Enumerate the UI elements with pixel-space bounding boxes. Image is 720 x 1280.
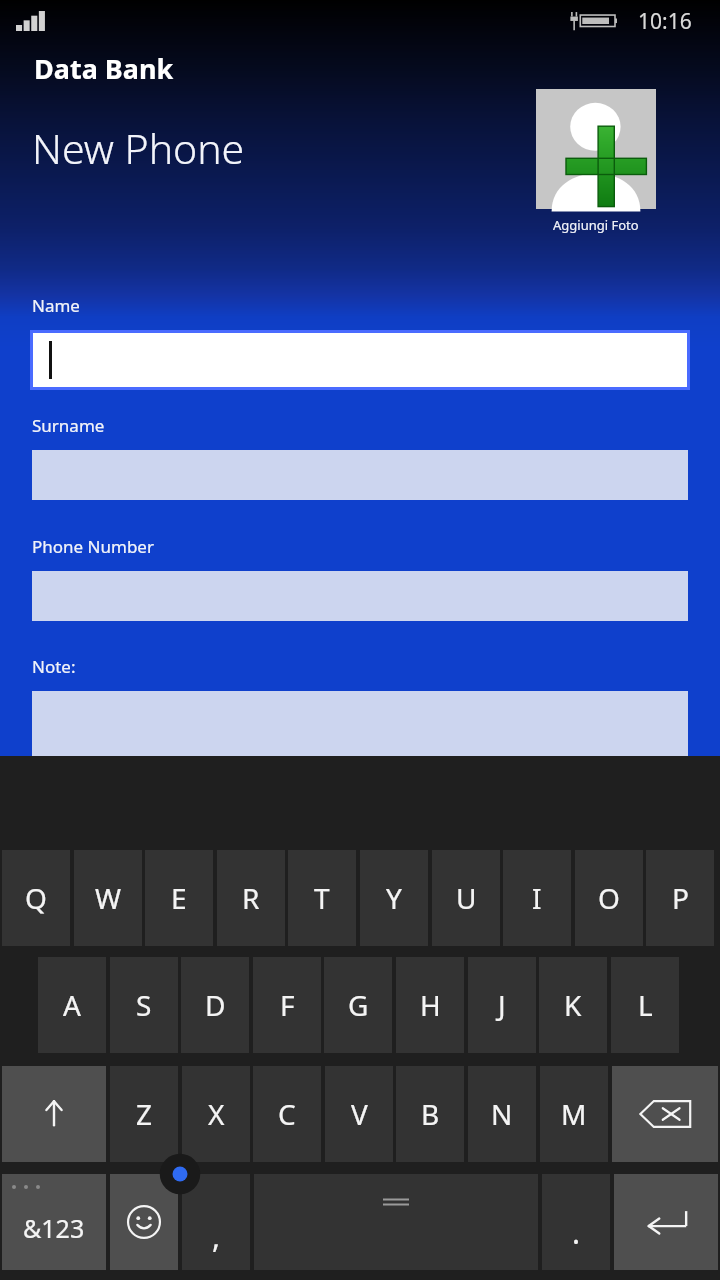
button[interactable]: W [74, 850, 142, 946]
staticText: M [561, 1095, 587, 1133]
staticText: U [456, 879, 477, 917]
staticText: &123 [23, 1211, 85, 1245]
button[interactable]: I [503, 850, 571, 946]
button[interactable]: T [288, 850, 356, 946]
staticText: K [564, 986, 582, 1024]
staticText: L [638, 986, 653, 1024]
staticText: Note: [32, 655, 76, 678]
other: Move cursor [158, 1152, 202, 1196]
button[interactable]: , [182, 1174, 250, 1270]
staticText: V [351, 1095, 368, 1133]
staticText: H [420, 986, 441, 1024]
button[interactable] [30, 330, 690, 390]
button[interactable]: G [324, 957, 392, 1053]
button[interactable]: Shift [2, 1066, 106, 1162]
staticText: , [212, 1216, 221, 1257]
staticText: 10:16 [638, 7, 692, 36]
staticText: P [672, 879, 689, 917]
button[interactable]: J [468, 957, 536, 1053]
button[interactable]: V [325, 1066, 393, 1162]
staticText: D [205, 986, 226, 1024]
button[interactable]: L [611, 957, 679, 1053]
button[interactable]: R [217, 850, 285, 946]
staticText: . [572, 1212, 581, 1253]
staticText: O [598, 879, 620, 917]
button[interactable]: N [468, 1066, 536, 1162]
button[interactable]: A [38, 957, 106, 1053]
button[interactable]: S [110, 957, 178, 1053]
staticText: A [63, 986, 81, 1024]
button[interactable]: F [253, 957, 321, 1053]
button[interactable]: P [646, 850, 714, 946]
button[interactable]: Emoji [110, 1174, 178, 1270]
staticText: New Phone [32, 120, 245, 176]
staticText: Name [32, 294, 80, 317]
button[interactable]: Y [360, 850, 428, 946]
button[interactable]: Space [254, 1174, 538, 1270]
staticText: B [421, 1095, 440, 1133]
staticText: W [95, 879, 122, 917]
staticText: R [242, 879, 260, 917]
staticText: Q [25, 879, 47, 917]
button[interactable]: K [539, 957, 607, 1053]
staticText: I [532, 879, 542, 917]
button[interactable]: C [253, 1066, 321, 1162]
staticText: N [491, 1095, 513, 1133]
button[interactable]: Q [2, 850, 70, 946]
staticText: F [280, 986, 295, 1024]
button[interactable]: . [542, 1174, 610, 1270]
staticText: Data Bank [34, 50, 174, 87]
staticText: C [278, 1095, 296, 1133]
staticText: Y [386, 879, 402, 917]
staticText: G [348, 986, 369, 1024]
staticText: S [136, 986, 152, 1024]
staticText: T [314, 879, 330, 917]
button[interactable]: &123 [2, 1174, 106, 1270]
button[interactable]: E [145, 850, 213, 946]
button[interactable]: M [540, 1066, 608, 1162]
button[interactable]: Z [110, 1066, 178, 1162]
button[interactable]: Aggiungi Foto [536, 89, 656, 234]
staticText: Aggiungi Foto [553, 216, 639, 234]
staticText: Surname [32, 414, 105, 437]
staticText: E [171, 879, 187, 917]
staticText: Z [136, 1095, 153, 1133]
button[interactable]: O [575, 850, 643, 946]
button[interactable]: B [396, 1066, 464, 1162]
button[interactable]: X [182, 1066, 250, 1162]
button[interactable]: D [181, 957, 249, 1053]
staticText: Phone Number [32, 535, 154, 558]
staticText: X [208, 1095, 225, 1133]
button[interactable]: Enter [614, 1174, 718, 1270]
button[interactable]: H [396, 957, 464, 1053]
button[interactable]: Backspace [612, 1066, 718, 1162]
button[interactable]: U [432, 850, 500, 946]
staticText: J [498, 986, 506, 1024]
